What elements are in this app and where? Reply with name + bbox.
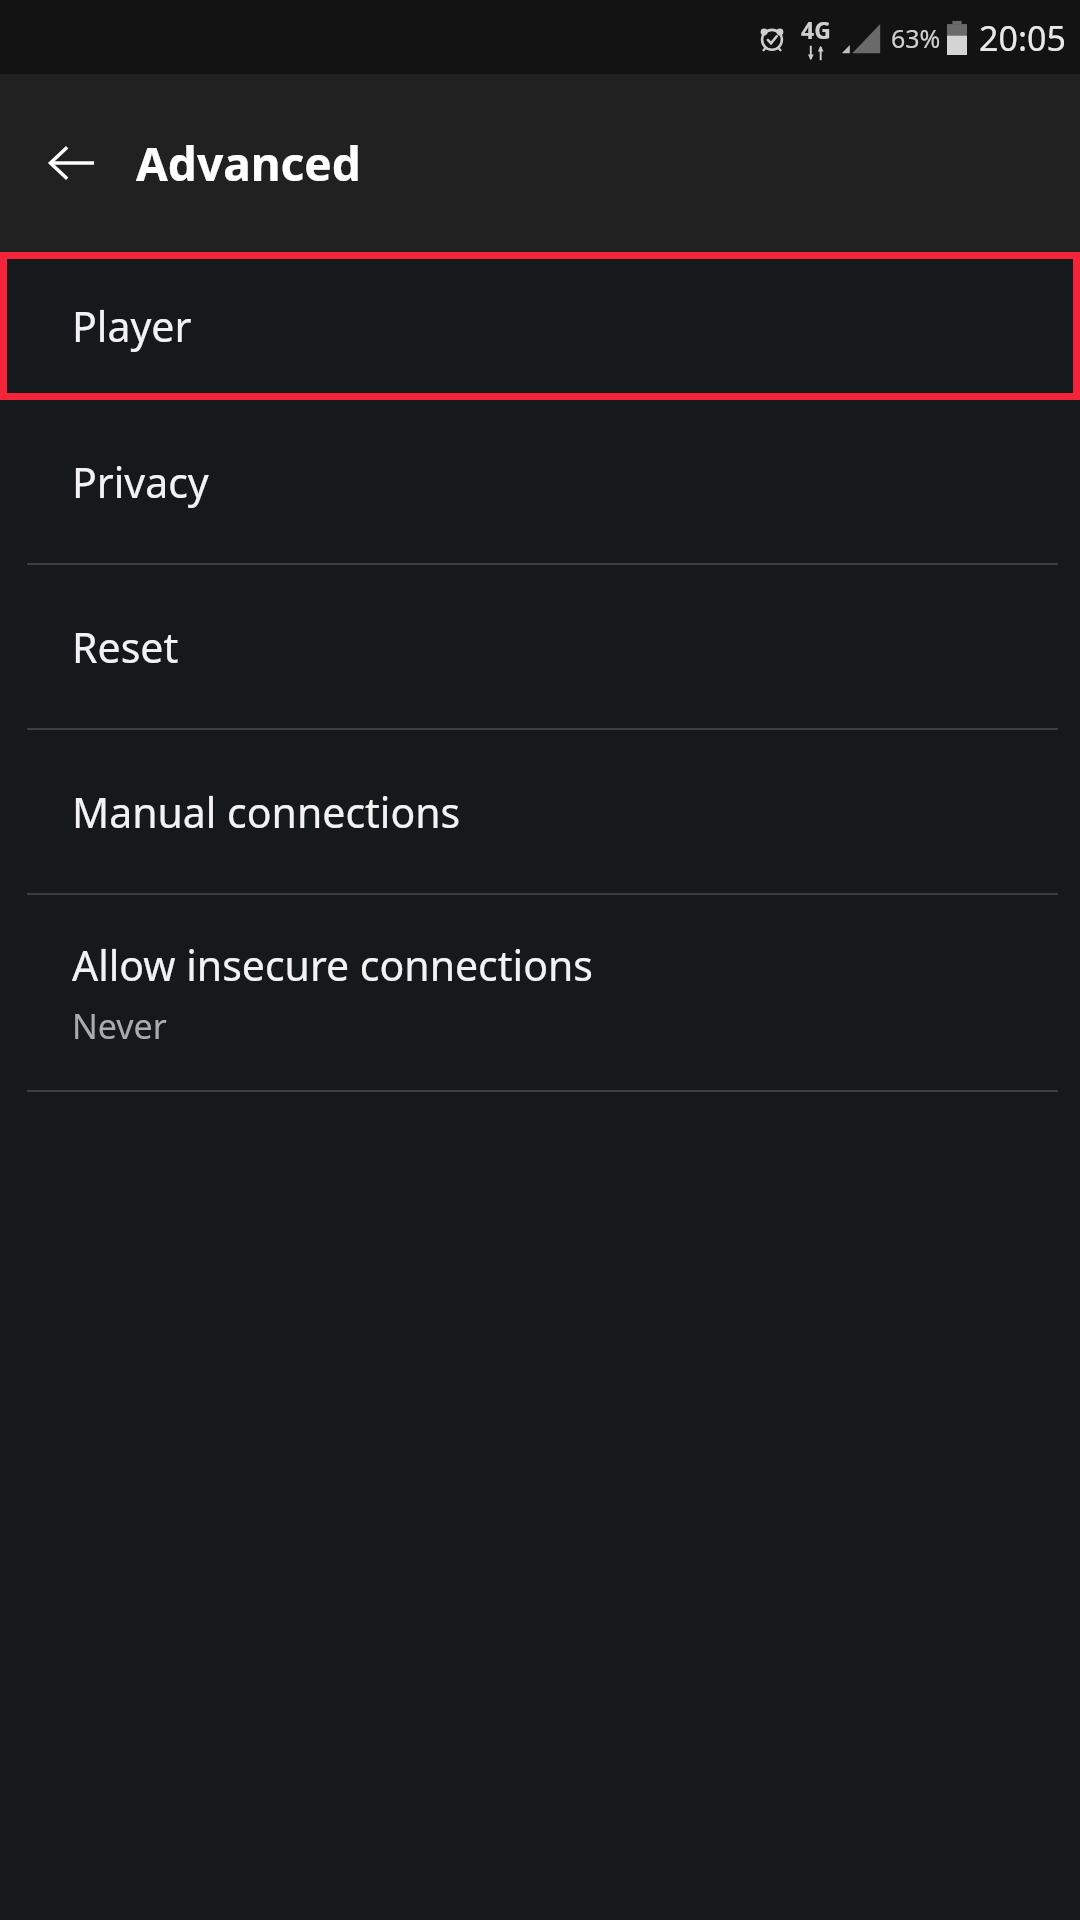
button[interactable]: Allow insecure connections xyxy=(0,895,1080,1090)
staticText: Advanced xyxy=(136,132,361,195)
staticText: Player xyxy=(72,298,192,354)
button[interactable]: Back xyxy=(36,127,108,199)
button[interactable]: Manual connections xyxy=(0,730,1080,893)
staticText: Manual connections xyxy=(72,784,461,840)
staticText: Allow insecure connections xyxy=(72,937,593,993)
staticText: Privacy xyxy=(72,454,209,510)
staticText: Reset xyxy=(72,619,179,675)
staticText: 4G xyxy=(801,14,831,45)
button[interactable]: Player xyxy=(0,252,1080,400)
button[interactable]: Privacy xyxy=(0,400,1080,563)
button[interactable]: Reset xyxy=(0,565,1080,728)
staticText: Never xyxy=(72,1003,167,1049)
staticText: 63% xyxy=(891,21,941,55)
staticText: 20:05 xyxy=(979,15,1066,61)
